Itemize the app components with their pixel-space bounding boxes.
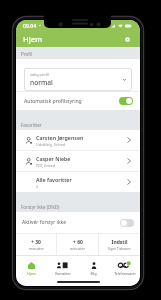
staticText: Aktivér forstyr ikke: [22, 219, 120, 226]
button[interactable]: Automatisk profilstyring: [16, 92, 140, 110]
staticText: Profil: [21, 51, 33, 57]
staticText: Carsten Jørgensen: [36, 134, 84, 141]
staticText: normal: [30, 78, 53, 87]
button[interactable]: Mig: [78, 256, 109, 280]
button[interactable]: vælg profil: [24, 68, 132, 91]
button[interactable]: Toggle: [119, 97, 133, 105]
staticText: Favoritter: [21, 122, 42, 128]
staticText: Kontakter: [55, 271, 71, 276]
staticText: minutter: [70, 246, 85, 251]
staticText: Hjem: [23, 34, 43, 44]
staticText: minutter: [29, 246, 44, 251]
staticText: + 60: [73, 239, 83, 246]
button[interactable]: Indstil: [99, 234, 140, 255]
staticText: + 30: [31, 239, 41, 246]
button[interactable]: Toggle: [120, 219, 134, 227]
button[interactable]: + 60: [57, 234, 98, 255]
button[interactable]: Casper Niebe: [16, 151, 140, 171]
staticText: Hjem: [27, 271, 36, 276]
staticText: 2: [36, 184, 39, 189]
button[interactable]: Hjem: [16, 256, 47, 280]
staticText: Automatisk profilstyring: [24, 98, 119, 105]
staticText: Eget Tidsrum: [108, 246, 131, 251]
button[interactable]: Aktivér forstyr ikke: [16, 212, 140, 233]
staticText: Alle favoritter: [36, 176, 72, 183]
staticText: vælg profil: [30, 72, 49, 77]
button[interactable]: Settings: [121, 33, 134, 46]
staticText: PID, United: [36, 163, 56, 168]
staticText: Indstil: [111, 239, 128, 246]
button[interactable]: Telefonsvarer: [109, 256, 140, 280]
staticText: Mig: [90, 271, 97, 276]
button[interactable]: Alle favoritter: [16, 172, 140, 192]
staticText: Casper Niebe: [36, 155, 71, 162]
staticText: Udvikling, United: [36, 142, 66, 147]
staticText: Forstyr ikke (DND): [21, 204, 60, 210]
button[interactable]: Kontakter: [47, 256, 78, 280]
staticText: Telefonsvarer: [114, 271, 136, 276]
button[interactable]: Carsten Jørgensen: [16, 130, 140, 150]
button[interactable]: + 30: [16, 234, 56, 255]
staticText: 09.04: [23, 22, 37, 29]
